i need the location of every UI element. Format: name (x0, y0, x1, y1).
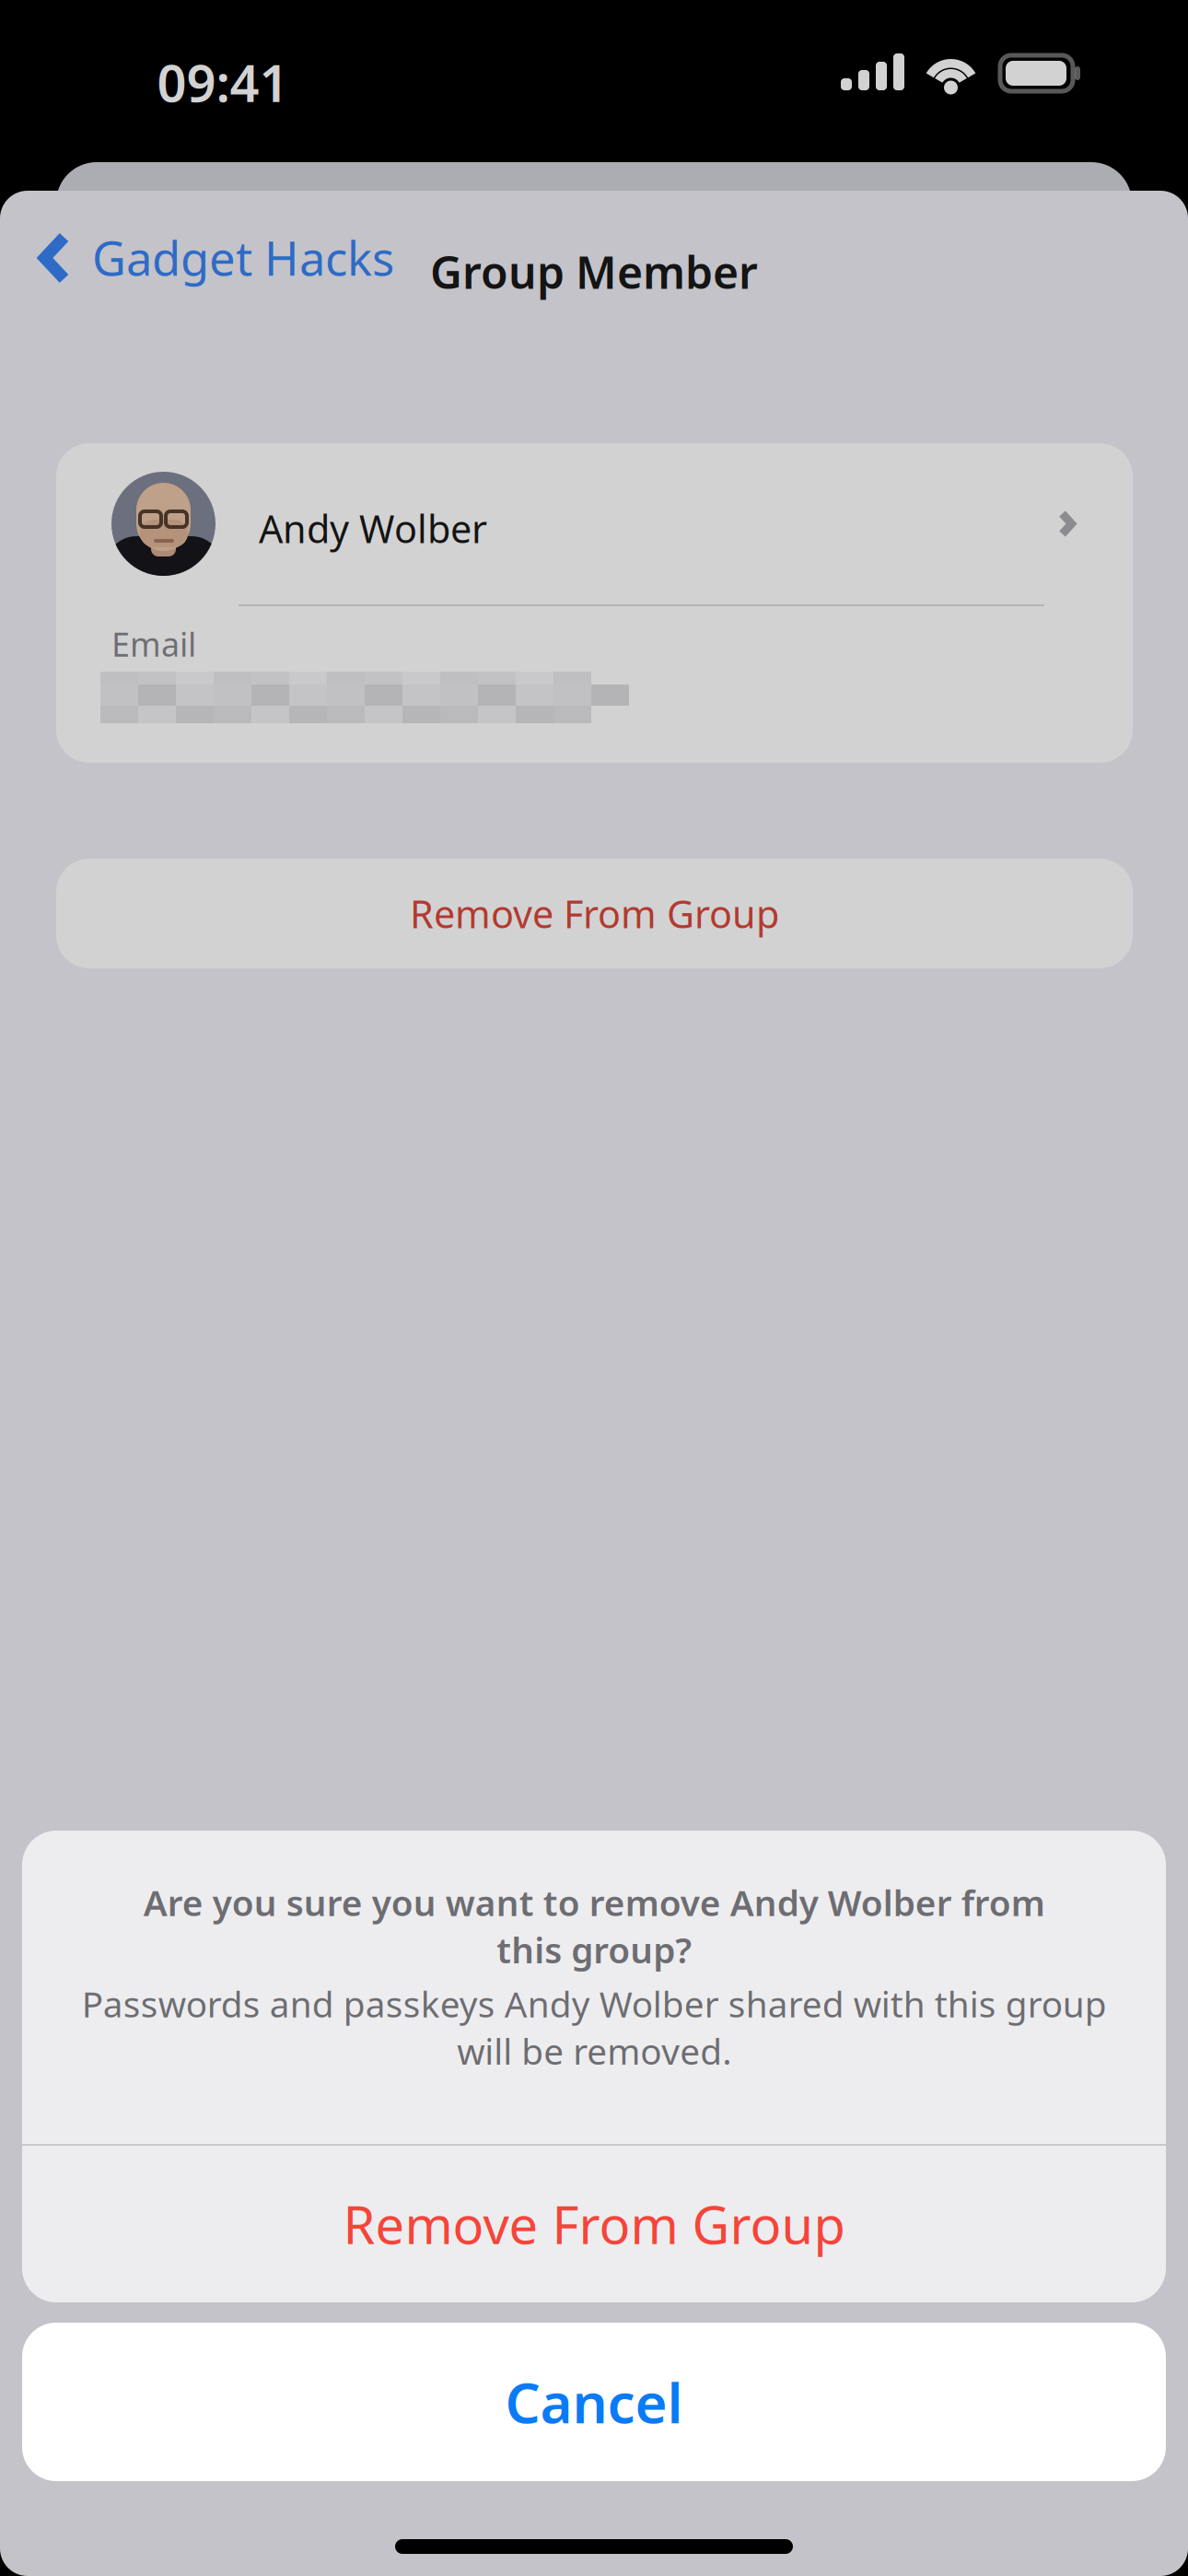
staticText: Remove From Group (343, 2190, 845, 2258)
button[interactable]: Gadget Hacks (0, 207, 332, 309)
button[interactable]: Andy Wolber (56, 443, 1133, 605)
staticText: Andy Wolber (259, 503, 487, 554)
staticText: Group Member (430, 242, 758, 301)
staticText: 09:41 (157, 48, 289, 116)
button[interactable]: Remove From Group (22, 2146, 1166, 2302)
staticText: Are you sure you want to remove Andy Wol… (143, 1879, 1045, 1973)
button[interactable]: Cancel (22, 2323, 1166, 2481)
staticText: Gadget Hacks (92, 227, 394, 289)
staticText: Cancel (505, 2365, 683, 2439)
staticText: Remove From Group (410, 888, 779, 939)
staticText: Email (111, 622, 196, 666)
staticText: Passwords and passkeys Andy Wolber share… (82, 1980, 1106, 2075)
button[interactable]: Remove From Group (56, 859, 1133, 968)
